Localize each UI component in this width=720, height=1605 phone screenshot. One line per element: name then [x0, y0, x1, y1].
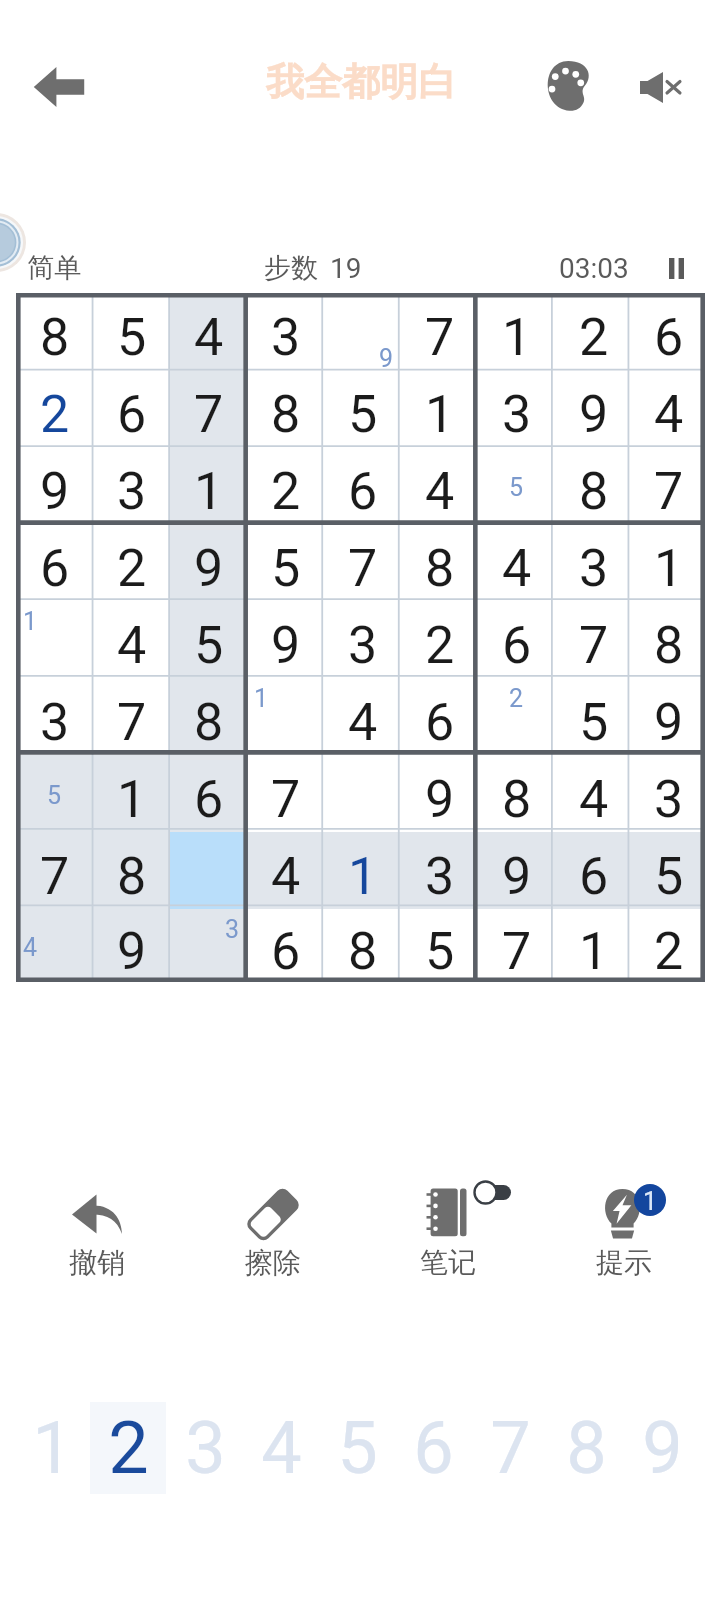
- button[interactable]: 1: [632, 524, 705, 601]
- button[interactable]: 4: [247, 832, 324, 909]
- button[interactable]: 8: [16, 293, 93, 370]
- button[interactable]: 3: [93, 447, 170, 524]
- button[interactable]: 2: [90, 1402, 166, 1494]
- button[interactable]: 擦除: [188, 1172, 358, 1288]
- button[interactable]: 8: [478, 755, 555, 832]
- button[interactable]: Pause: [654, 246, 698, 290]
- button[interactable]: 4: [555, 755, 632, 832]
- button[interactable]: 3: [16, 678, 93, 755]
- button[interactable]: 8: [170, 678, 247, 755]
- button[interactable]: 7: [478, 909, 555, 982]
- button[interactable]: 9: [401, 755, 478, 832]
- button[interactable]: 4: [243, 1402, 319, 1494]
- button[interactable]: 2: [93, 524, 170, 601]
- button[interactable]: 7: [324, 524, 401, 601]
- button[interactable]: Theme: [530, 49, 604, 123]
- button[interactable]: 1: [16, 601, 93, 678]
- button[interactable]: 4: [93, 601, 170, 678]
- button[interactable]: 7: [16, 832, 93, 909]
- button[interactable]: 9: [555, 370, 632, 447]
- button[interactable]: 1: [247, 678, 324, 755]
- button[interactable]: 9: [624, 1402, 700, 1494]
- button[interactable]: 2: [632, 909, 705, 982]
- button[interactable]: 6: [401, 678, 478, 755]
- button[interactable]: 5: [555, 678, 632, 755]
- button[interactable]: 5: [478, 447, 555, 524]
- button[interactable]: 6: [170, 755, 247, 832]
- button[interactable]: 8: [548, 1402, 624, 1494]
- button[interactable]: 8: [324, 909, 401, 982]
- button[interactable]: 6: [16, 524, 93, 601]
- button[interactable]: 3: [401, 832, 478, 909]
- button[interactable]: 7: [472, 1402, 548, 1494]
- button[interactable]: 2: [247, 447, 324, 524]
- button[interactable]: 撤销: [12, 1172, 182, 1288]
- button[interactable]: 2: [401, 601, 478, 678]
- button[interactable]: 5: [247, 524, 324, 601]
- button[interactable]: 4: [324, 678, 401, 755]
- button[interactable]: 5: [324, 370, 401, 447]
- button[interactable]: 3: [478, 370, 555, 447]
- button[interactable]: 6: [555, 832, 632, 909]
- button[interactable]: 8: [401, 524, 478, 601]
- button[interactable]: Sound off: [623, 50, 697, 124]
- button[interactable]: 9: [93, 909, 170, 982]
- button[interactable]: 3: [555, 524, 632, 601]
- button[interactable]: 2: [555, 293, 632, 370]
- button[interactable]: 9: [247, 601, 324, 678]
- button[interactable]: 3: [170, 909, 247, 982]
- button[interactable]: 1: [478, 293, 555, 370]
- button[interactable]: 9: [324, 293, 401, 370]
- button[interactable]: 笔记: [363, 1172, 533, 1288]
- button[interactable]: 3: [247, 293, 324, 370]
- staticText: 4: [502, 538, 532, 599]
- button[interactable]: 3: [167, 1402, 243, 1494]
- button[interactable]: 9: [632, 678, 705, 755]
- button[interactable]: 6: [395, 1402, 471, 1494]
- button[interactable]: 6: [247, 909, 324, 982]
- button[interactable]: 2: [478, 678, 555, 755]
- button[interactable]: 7: [632, 447, 705, 524]
- button[interactable]: 8: [555, 447, 632, 524]
- button[interactable]: 4: [478, 524, 555, 601]
- button[interactable]: 6: [324, 447, 401, 524]
- button[interactable]: 1: [539, 1172, 709, 1288]
- button[interactable]: 1: [14, 1402, 90, 1494]
- button[interactable]: [170, 832, 247, 909]
- button[interactable]: 9: [16, 447, 93, 524]
- button[interactable]: 6: [93, 370, 170, 447]
- button[interactable]: 7: [247, 755, 324, 832]
- button[interactable]: 5: [93, 293, 170, 370]
- button[interactable]: 4: [632, 370, 705, 447]
- button[interactable]: 5: [319, 1402, 395, 1494]
- button[interactable]: 7: [170, 370, 247, 447]
- button[interactable]: 5: [170, 601, 247, 678]
- button[interactable]: 7: [555, 601, 632, 678]
- button[interactable]: 9: [478, 832, 555, 909]
- button[interactable]: 8: [247, 370, 324, 447]
- button[interactable]: 7: [93, 678, 170, 755]
- button[interactable]: 6: [478, 601, 555, 678]
- button[interactable]: 1: [401, 370, 478, 447]
- button[interactable]: 4: [401, 447, 478, 524]
- button[interactable]: 6: [632, 293, 705, 370]
- button[interactable]: 1: [555, 909, 632, 982]
- button[interactable]: 1: [93, 755, 170, 832]
- button[interactable]: 9: [170, 524, 247, 601]
- button[interactable]: 5: [401, 909, 478, 982]
- staticText: 7: [490, 1406, 531, 1490]
- button[interactable]: 8: [632, 601, 705, 678]
- button[interactable]: 8: [93, 832, 170, 909]
- button[interactable]: 4: [170, 293, 247, 370]
- button[interactable]: [324, 755, 401, 832]
- button[interactable]: 1: [170, 447, 247, 524]
- button[interactable]: 5: [16, 755, 93, 832]
- button[interactable]: 1: [324, 832, 401, 909]
- button[interactable]: 7: [401, 293, 478, 370]
- button[interactable]: 5: [632, 832, 705, 909]
- button[interactable]: 2: [16, 370, 93, 447]
- button[interactable]: 4: [16, 909, 93, 982]
- button[interactable]: 3: [632, 755, 705, 832]
- button[interactable]: 3: [324, 601, 401, 678]
- button[interactable]: Back: [21, 49, 97, 125]
